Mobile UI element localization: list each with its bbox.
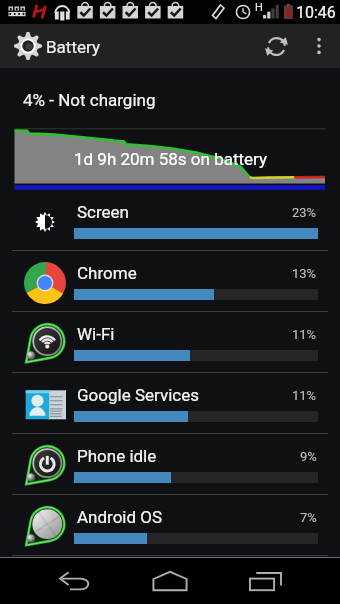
button[interactable]: Screen <box>0 190 340 251</box>
staticText: 23% <box>292 205 317 220</box>
staticText: Screen <box>77 202 130 222</box>
staticText: Wi-Fi <box>77 324 115 344</box>
staticText: Google Services <box>77 385 199 405</box>
staticText: Chrome <box>77 263 137 283</box>
staticText: 11% <box>292 327 317 342</box>
staticText: Phone idle <box>77 446 157 466</box>
button[interactable]: Recent apps <box>218 558 312 604</box>
button[interactable]: Google Services <box>0 373 340 434</box>
staticText: 10:46 <box>296 3 336 22</box>
staticText: 9% <box>300 449 317 464</box>
staticText: H <box>255 1 263 14</box>
button[interactable]: Phone idle <box>0 434 340 495</box>
button[interactable]: Chrome <box>0 251 340 312</box>
staticText: 7% <box>300 510 317 525</box>
staticText: Battery <box>46 37 100 57</box>
button[interactable]: Back <box>28 558 122 604</box>
staticText: 11% <box>292 388 317 403</box>
staticText: 4% - Not charging <box>23 90 156 110</box>
button[interactable]: Wi-Fi <box>0 312 340 373</box>
button[interactable]: More options <box>298 24 340 68</box>
staticText: 13% <box>292 266 317 281</box>
button[interactable]: Home <box>123 558 217 604</box>
staticText: 1d 9h 20m 58s on battery <box>74 149 268 169</box>
button[interactable]: Refresh <box>254 24 298 68</box>
button[interactable]: Android OS <box>0 495 340 556</box>
staticText: Android OS <box>77 507 163 527</box>
